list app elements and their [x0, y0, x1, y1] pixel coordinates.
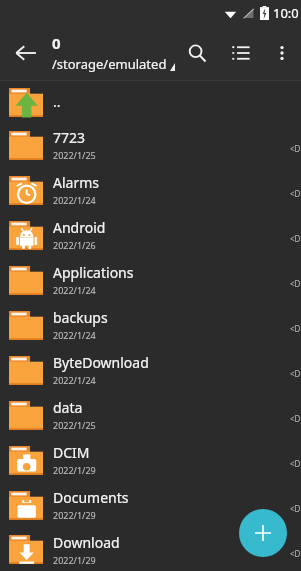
staticText: 2022/1/24 — [53, 374, 96, 386]
button[interactable]: Documents — [0, 482, 301, 527]
staticText: data — [53, 398, 83, 417]
button[interactable]: DCIM — [0, 437, 301, 482]
staticText: Applications — [53, 263, 134, 282]
staticText: <D — [290, 548, 301, 559]
staticText: <D — [290, 233, 301, 244]
staticText: Download — [53, 533, 120, 552]
button[interactable]: .. — [0, 81, 301, 122]
staticText: <D — [290, 368, 301, 379]
staticText: 10:0 — [273, 4, 299, 22]
staticText: <D — [290, 323, 301, 334]
staticText: 2022/1/24 — [53, 329, 96, 341]
button[interactable]: Add — [239, 509, 287, 557]
staticText: DCIM — [53, 443, 90, 462]
button[interactable]: Applications — [0, 257, 301, 302]
staticText: <D — [290, 413, 301, 424]
button[interactable]: 7723 — [0, 122, 301, 167]
button[interactable]: Android — [0, 212, 301, 257]
staticText: .. — [53, 92, 61, 111]
button[interactable]: data — [0, 392, 301, 437]
button[interactable]: More options — [263, 34, 301, 72]
staticText: Android — [53, 218, 106, 237]
button[interactable]: ByteDownload — [0, 347, 301, 392]
staticText: <D — [290, 458, 301, 469]
staticText: <D — [290, 143, 301, 154]
staticText: 2022/1/24 — [53, 194, 96, 206]
button[interactable]: View mode — [219, 31, 263, 75]
button[interactable]: 0 — [52, 33, 175, 73]
staticText: 2022/1/29 — [53, 509, 96, 521]
button[interactable]: Alarms — [0, 167, 301, 212]
staticText: 2022/1/26 — [53, 239, 96, 251]
button[interactable]: backups — [0, 302, 301, 347]
staticText: /storage/emulated — [52, 55, 167, 73]
staticText: <D — [290, 503, 301, 514]
button[interactable]: Search — [175, 31, 219, 75]
staticText: 2022/1/24 — [53, 284, 96, 296]
staticText: 2022/1/25 — [53, 419, 96, 431]
staticText: ByteDownload — [53, 353, 149, 372]
staticText: 7723 — [53, 128, 86, 147]
staticText: 0 — [52, 33, 61, 53]
button[interactable]: Back — [0, 27, 52, 79]
staticText: 2022/1/25 — [53, 149, 96, 161]
staticText: 2022/1/29 — [53, 464, 96, 476]
staticText: <D — [290, 188, 301, 199]
staticText: backups — [53, 308, 108, 327]
button[interactable]: Download — [0, 527, 301, 571]
staticText: <D — [290, 278, 301, 289]
staticText: Alarms — [53, 173, 99, 192]
staticText: Documents — [53, 488, 129, 507]
staticText: 2022/1/29 — [53, 554, 96, 566]
